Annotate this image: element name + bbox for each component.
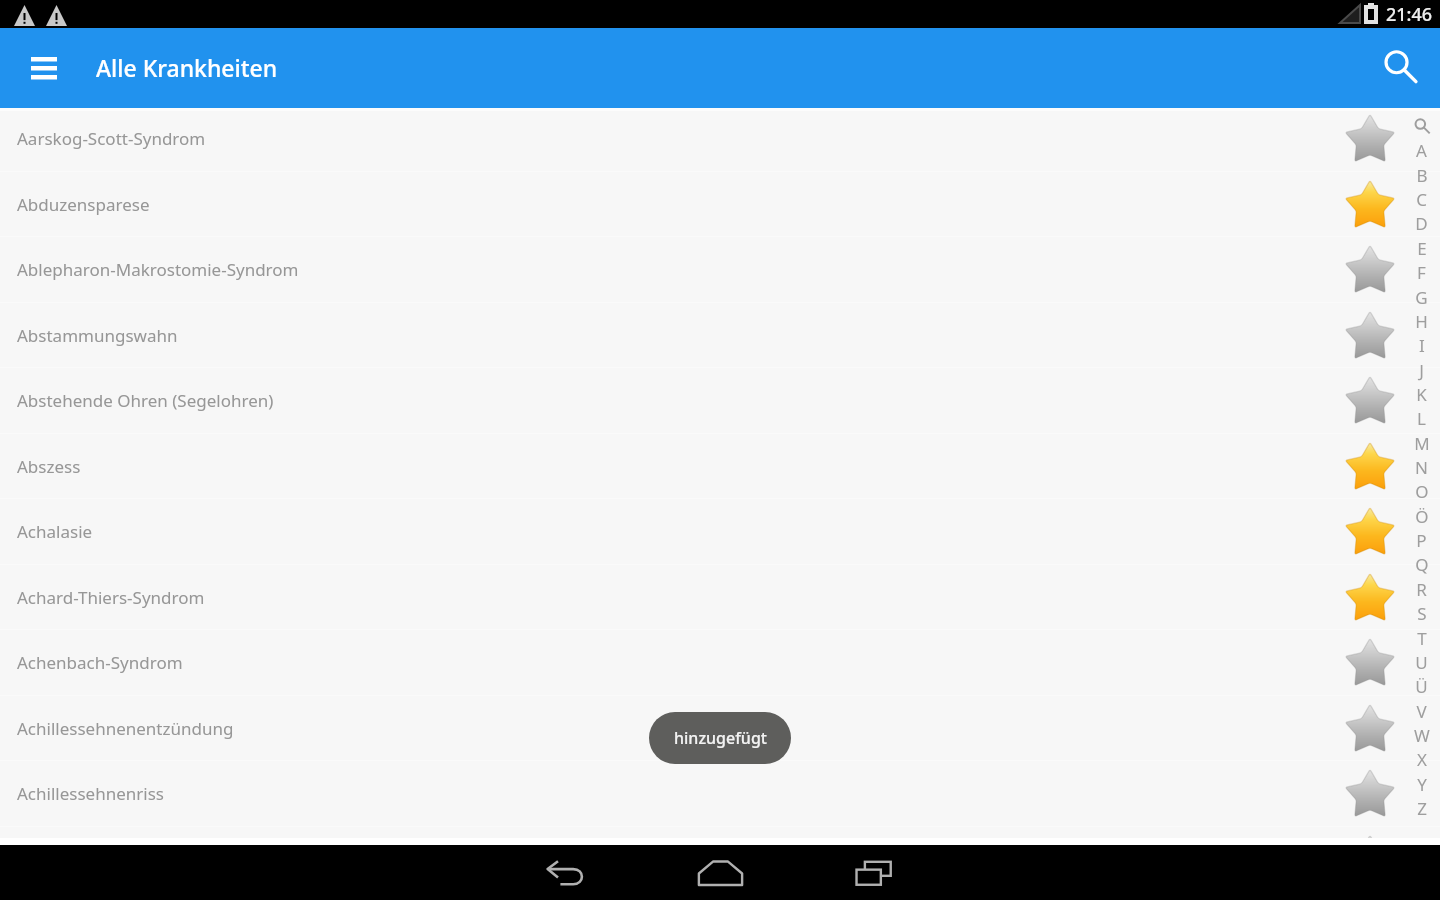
button[interactable]: Z: [1403, 796, 1440, 820]
button[interactable]: D: [1403, 211, 1440, 235]
button[interactable]: B: [1403, 163, 1440, 187]
staticText: 21:46: [1386, 2, 1433, 27]
button[interactable]: Favorit: [1322, 696, 1418, 761]
button[interactable]: Achillessehnenentzündung: [0, 696, 1440, 761]
button[interactable]: Ablepharon-Makrostomie-Syndrom: [0, 237, 1440, 302]
button[interactable]: Favorit: [1322, 434, 1418, 499]
button[interactable]: Achard-Thiers-Syndrom: [0, 565, 1440, 630]
staticText: Achillessehnenriss: [17, 782, 1322, 805]
staticText: J: [1419, 359, 1424, 382]
button[interactable]: Aarskog-Scott-Syndrom: [0, 108, 1440, 171]
button[interactable]: T: [1403, 626, 1440, 650]
staticText: Z: [1417, 797, 1427, 820]
staticText: P: [1416, 529, 1427, 552]
staticText: R: [1416, 578, 1427, 601]
button[interactable]: H: [1403, 309, 1440, 333]
staticText: Achenbach-Syndrom: [17, 651, 1322, 674]
staticText: B: [1416, 164, 1428, 187]
button[interactable]: Favorit: [1322, 368, 1418, 433]
button[interactable]: Q: [1403, 552, 1440, 576]
button[interactable]: Favorit: [1322, 237, 1418, 302]
staticText: G: [1415, 286, 1428, 309]
staticText: F: [1417, 261, 1426, 284]
button[interactable]: Favorit: [1322, 108, 1418, 171]
staticText: T: [1417, 627, 1427, 650]
staticText: Ablepharon-Makrostomie-Syndrom: [17, 258, 1322, 281]
staticText: K: [1416, 383, 1427, 406]
staticText: S: [1417, 602, 1427, 625]
button[interactable]: Favorit: [1322, 303, 1418, 368]
button[interactable]: E: [1403, 236, 1440, 260]
staticText: Y: [1417, 773, 1427, 796]
button[interactable]: C: [1403, 187, 1440, 211]
staticText: L: [1417, 407, 1426, 430]
button[interactable]: M: [1403, 431, 1440, 455]
staticText: M: [1414, 432, 1430, 455]
button[interactable]: Suche im Index: [1403, 114, 1440, 138]
button[interactable]: Startseite: [645, 845, 795, 900]
button[interactable]: A: [1403, 138, 1440, 162]
staticText: Ü: [1415, 675, 1428, 698]
staticText: O: [1415, 480, 1429, 503]
button[interactable]: L: [1403, 406, 1440, 430]
button[interactable]: Übersicht: [799, 845, 949, 900]
button[interactable]: V: [1403, 699, 1440, 723]
staticText: Aarskog-Scott-Syndrom: [17, 127, 1322, 150]
button[interactable]: S: [1403, 601, 1440, 625]
button[interactable]: Abduzensparese: [0, 172, 1440, 237]
button[interactable]: Menü: [14, 28, 74, 108]
staticText: E: [1417, 237, 1427, 260]
button[interactable]: I: [1403, 333, 1440, 357]
staticText: Achillessehnenentzündung: [17, 717, 1322, 740]
button[interactable]: Zurück: [491, 845, 641, 900]
button[interactable]: O: [1403, 479, 1440, 503]
button[interactable]: R: [1403, 577, 1440, 601]
staticText: U: [1415, 651, 1428, 674]
button[interactable]: P: [1403, 528, 1440, 552]
button[interactable]: Abstehende Ohren (Segelohren): [0, 368, 1440, 433]
button[interactable]: U: [1403, 650, 1440, 674]
button[interactable]: Ü: [1403, 674, 1440, 698]
staticText: Abstehende Ohren (Segelohren): [17, 389, 1322, 412]
button[interactable]: K: [1403, 382, 1440, 406]
staticText: X: [1417, 748, 1427, 771]
staticText: D: [1415, 212, 1428, 235]
button[interactable]: Favorit: [1322, 565, 1418, 630]
staticText: Alle Krankheiten: [96, 52, 278, 83]
staticText: N: [1415, 456, 1428, 479]
button[interactable]: Abszess: [0, 434, 1440, 499]
staticText: Q: [1415, 553, 1429, 576]
staticText: Ö: [1415, 505, 1429, 528]
staticText: Abstammungswahn: [17, 324, 1322, 347]
button[interactable]: N: [1403, 455, 1440, 479]
staticText: Achard-Thiers-Syndrom: [17, 586, 1322, 609]
staticText: Abszess: [17, 455, 1322, 478]
button[interactable]: J: [1403, 358, 1440, 382]
button[interactable]: Achillessehnenriss: [0, 761, 1440, 826]
button[interactable]: Y: [1403, 772, 1440, 796]
button[interactable]: Ö: [1403, 504, 1440, 528]
staticText: V: [1416, 700, 1427, 723]
staticText: C: [1416, 188, 1427, 211]
staticText: W: [1414, 724, 1430, 747]
staticText: hinzugefügt: [674, 727, 767, 749]
staticText: H: [1415, 310, 1428, 333]
button[interactable]: W: [1403, 723, 1440, 747]
button[interactable]: Achalasie: [0, 499, 1440, 564]
staticText: A: [1416, 139, 1427, 162]
staticText: I: [1419, 334, 1425, 357]
button[interactable]: Abstammungswahn: [0, 303, 1440, 368]
button[interactable]: G: [1403, 285, 1440, 309]
button[interactable]: Favorit: [1322, 499, 1418, 564]
button[interactable]: F: [1403, 260, 1440, 284]
button[interactable]: Favorit: [1322, 630, 1418, 695]
staticText: Abduzensparese: [17, 193, 1322, 216]
staticText: Achalasie: [17, 520, 1322, 543]
button[interactable]: X: [1403, 747, 1440, 771]
button[interactable]: Suche: [1365, 28, 1437, 108]
button[interactable]: Achenbach-Syndrom: [0, 630, 1440, 695]
button[interactable]: Favorit: [1322, 761, 1418, 826]
button[interactable]: Favorit: [1322, 172, 1418, 237]
